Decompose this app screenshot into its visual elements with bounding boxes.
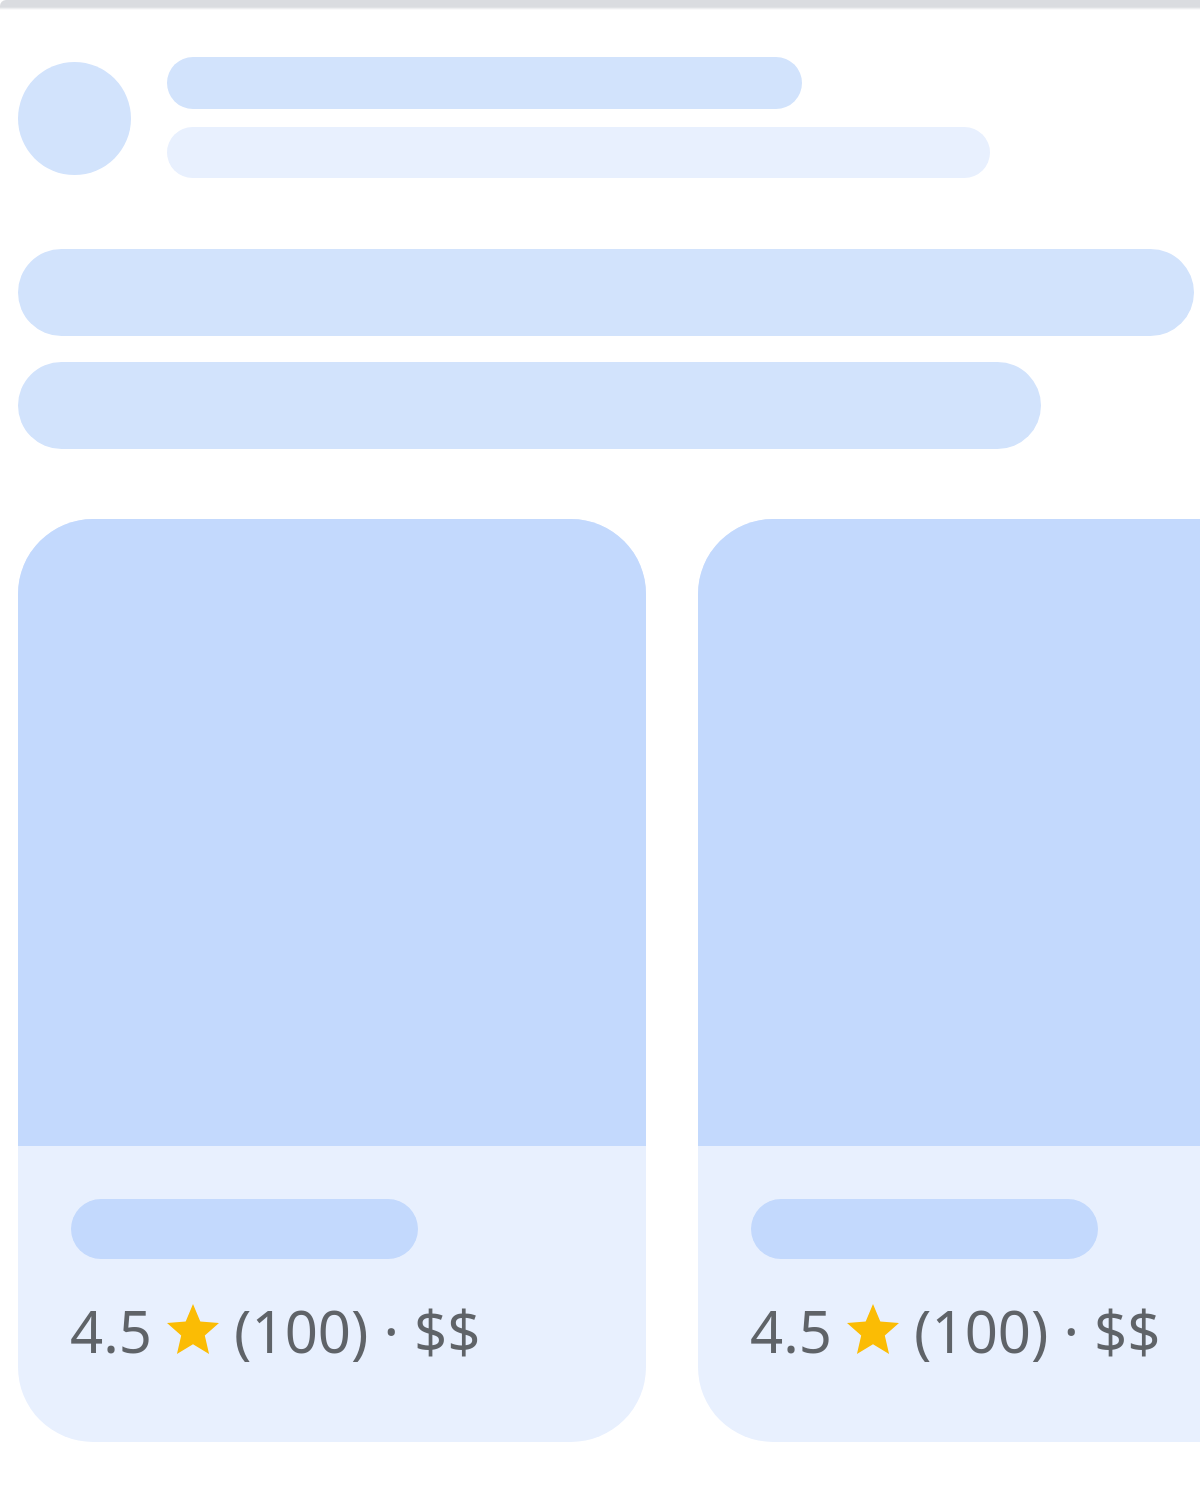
staticText: 4.5 bbox=[750, 1291, 847, 1370]
button[interactable]: 4.5 bbox=[698, 519, 1200, 1442]
other: Rating bbox=[167, 1304, 219, 1354]
staticText: (100) · $$ bbox=[219, 1291, 481, 1370]
button[interactable]: Account bbox=[18, 62, 131, 175]
staticText: 4.5 bbox=[70, 1291, 167, 1370]
other: Rating bbox=[847, 1304, 899, 1354]
button[interactable]: 4.5 bbox=[18, 519, 646, 1442]
staticText: (100) · $$ bbox=[899, 1291, 1161, 1370]
